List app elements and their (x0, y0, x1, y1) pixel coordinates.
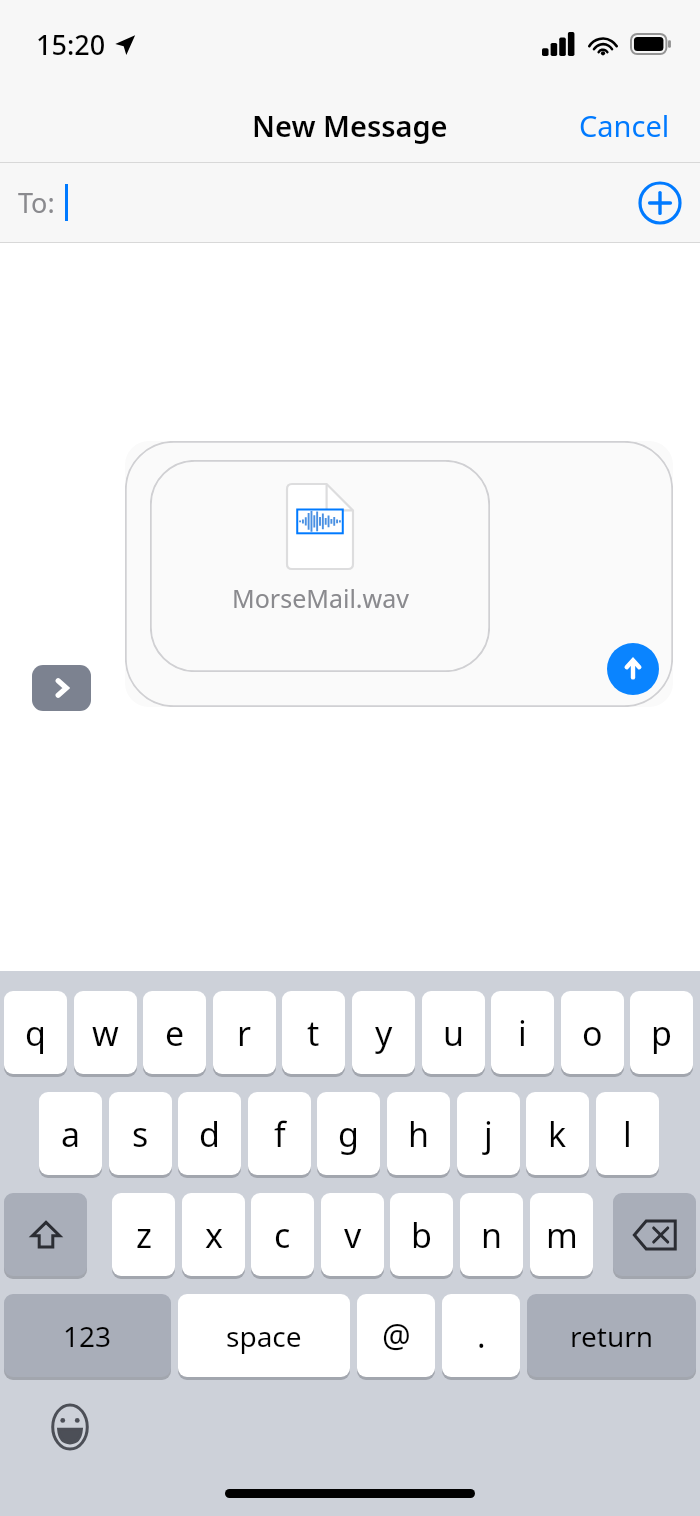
button[interactable]: To: (0, 163, 700, 242)
button[interactable]: d (178, 1092, 241, 1175)
staticText: t (307, 1010, 320, 1056)
staticText: q (25, 1010, 46, 1056)
button[interactable]: z (112, 1193, 175, 1276)
staticText: 15:20 (36, 26, 106, 63)
staticText: d (199, 1111, 220, 1157)
staticText: y (375, 1010, 393, 1056)
button[interactable]: n (460, 1193, 523, 1276)
button[interactable]: m (530, 1193, 593, 1276)
button[interactable]: s (109, 1092, 172, 1175)
staticText: z (136, 1212, 152, 1258)
button[interactable]: h (387, 1092, 450, 1175)
staticText: m (546, 1212, 578, 1258)
button[interactable]: k (526, 1092, 589, 1175)
button[interactable]: o (561, 991, 624, 1074)
staticText: u (443, 1010, 465, 1056)
staticText: @ (382, 1314, 411, 1358)
staticText: a (61, 1111, 81, 1157)
staticText: b (411, 1212, 432, 1258)
staticText: o (582, 1010, 603, 1056)
button[interactable]: v (321, 1193, 384, 1276)
button[interactable]: Add contact (634, 177, 686, 229)
staticText: v (344, 1212, 362, 1258)
button[interactable]: q (4, 991, 67, 1074)
button[interactable]: return (527, 1294, 696, 1377)
button[interactable]: j (457, 1092, 520, 1175)
button[interactable]: x (182, 1193, 245, 1276)
button[interactable]: a (39, 1092, 102, 1175)
staticText: p (651, 1010, 672, 1056)
staticText: i (518, 1010, 527, 1056)
staticText: f (274, 1111, 286, 1157)
staticText: w (92, 1010, 119, 1056)
staticText: Cancel (579, 106, 670, 145)
staticText: c (274, 1212, 291, 1258)
button[interactable]: @ (357, 1294, 435, 1377)
button[interactable]: i (491, 991, 554, 1074)
staticText: To: (18, 184, 55, 221)
button[interactable]: . (442, 1294, 520, 1377)
staticText: New Message (252, 106, 448, 145)
staticText: k (548, 1111, 567, 1157)
button[interactable]: y (352, 991, 415, 1074)
staticText: e (165, 1010, 185, 1056)
button[interactable]: 123 (4, 1294, 171, 1377)
staticText: j (484, 1111, 493, 1157)
button[interactable]: w (74, 991, 137, 1074)
staticText: n (481, 1212, 503, 1258)
button[interactable]: b (390, 1193, 453, 1276)
button[interactable]: Shift (4, 1193, 87, 1276)
button[interactable]: u (422, 991, 485, 1074)
staticText: g (338, 1111, 359, 1157)
button[interactable]: l (596, 1092, 659, 1175)
button[interactable]: t (282, 991, 345, 1074)
button[interactable]: Backspace (613, 1193, 696, 1276)
button[interactable]: p (630, 991, 693, 1074)
staticText: return (570, 1317, 654, 1355)
staticText: r (237, 1010, 252, 1056)
button[interactable]: g (317, 1092, 380, 1175)
button[interactable]: Show more options (32, 665, 91, 711)
staticText: x (205, 1212, 223, 1258)
button[interactable]: Send (607, 643, 659, 695)
button[interactable]: space (178, 1294, 350, 1377)
staticText: h (408, 1111, 430, 1157)
staticText: s (132, 1111, 149, 1157)
button[interactable]: r (213, 991, 276, 1074)
staticText: space (226, 1317, 302, 1355)
button[interactable]: c (251, 1193, 314, 1276)
button[interactable]: Cancel (549, 96, 700, 155)
button[interactable]: f (248, 1092, 311, 1175)
button[interactable]: Emoji keyboard (44, 1401, 96, 1453)
staticText: . (477, 1314, 486, 1358)
button[interactable]: MorseMail.wav (125, 441, 673, 707)
button[interactable]: e (143, 991, 206, 1074)
staticText: 123 (63, 1317, 112, 1355)
staticText: l (623, 1111, 632, 1157)
staticText: MorseMail.wav (232, 581, 409, 615)
